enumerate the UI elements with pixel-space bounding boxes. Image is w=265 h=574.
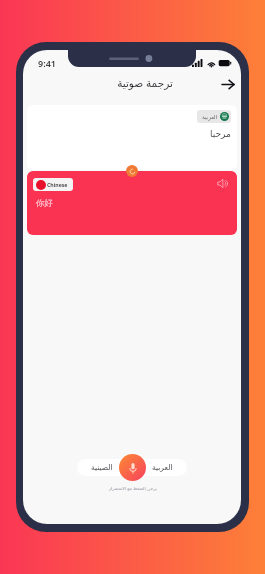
button[interactable]: العربية bbox=[27, 105, 237, 170]
button[interactable]: Swap languages bbox=[126, 165, 138, 177]
staticText: العربية bbox=[202, 114, 218, 120]
staticText: الصينية bbox=[91, 463, 113, 472]
button[interactable]: Chinese bbox=[27, 171, 237, 235]
button[interactable]: الصينية bbox=[77, 459, 126, 476]
staticText: 9:41 bbox=[38, 57, 56, 69]
staticText: يرجى الضغط مع الاستمرار bbox=[109, 485, 157, 491]
staticText: 你好 bbox=[36, 198, 53, 209]
button[interactable]: Forward bbox=[217, 73, 239, 95]
button[interactable]: Hold to talk bbox=[119, 454, 146, 481]
button[interactable]: العربية bbox=[138, 459, 187, 476]
staticText: العربية bbox=[152, 463, 173, 472]
staticText: مرحبا bbox=[210, 129, 231, 139]
button[interactable]: Play audio bbox=[216, 176, 231, 191]
staticText: Chinese bbox=[47, 181, 68, 188]
staticText: ترجمة صوتية bbox=[117, 76, 173, 90]
